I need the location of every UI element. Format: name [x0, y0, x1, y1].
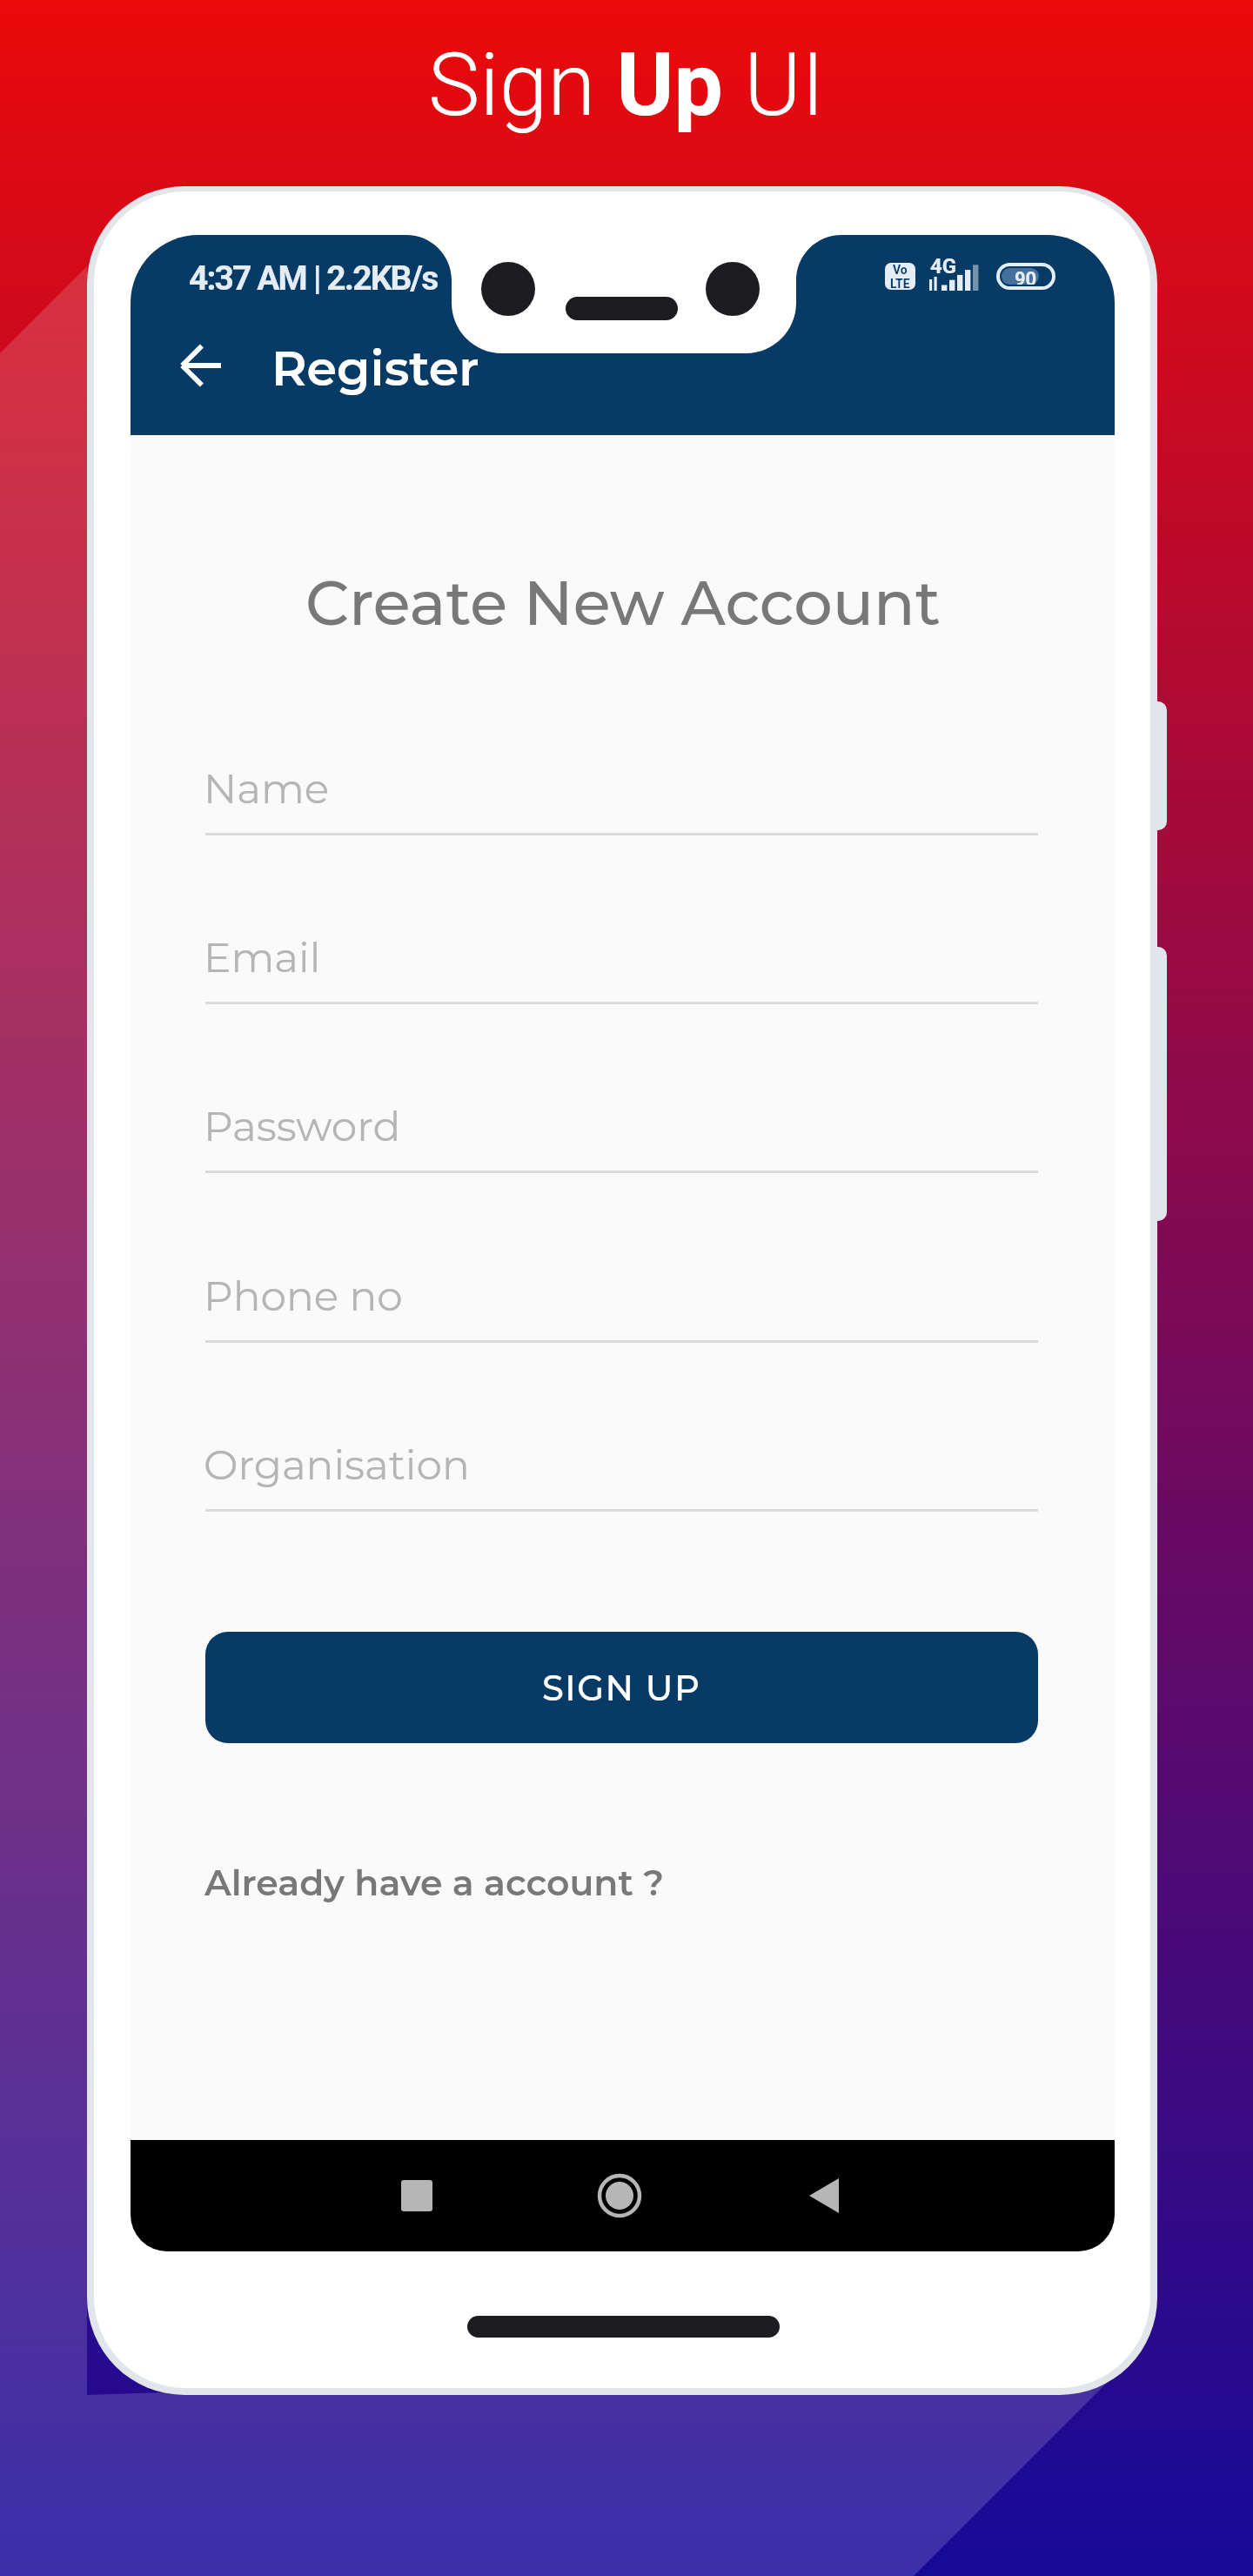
staticText: Create New Account [305, 566, 941, 640]
button[interactable]: Home [585, 2161, 654, 2231]
staticText: 4G [930, 254, 957, 278]
staticText: 90 [1015, 268, 1037, 285]
staticText: Organisation [204, 1440, 470, 1490]
staticText: Email [204, 933, 321, 983]
button[interactable]: Name [205, 748, 1038, 835]
button[interactable]: Recent apps [382, 2161, 452, 2231]
button[interactable]: Back [165, 331, 235, 400]
button[interactable]: Already have a account ? [204, 1861, 664, 1904]
staticText: Name [204, 764, 330, 814]
staticText: Register [271, 339, 479, 398]
button[interactable]: SIGN UP [205, 1632, 1038, 1743]
staticText: Already have a account ? [204, 1861, 664, 1904]
staticText: SIGN UP [542, 1667, 701, 1709]
button[interactable]: Password [205, 1085, 1038, 1173]
staticText: Vo [893, 263, 908, 277]
button[interactable]: Organisation [205, 1424, 1038, 1512]
button[interactable]: Phone no [205, 1255, 1038, 1343]
staticText: Password [204, 1102, 401, 1151]
staticText: Phone no [204, 1271, 403, 1321]
staticText: 4:37 AM | 2.2KB/s [189, 258, 438, 299]
staticText: Sign Up UI [428, 34, 825, 136]
button[interactable]: Back [789, 2161, 859, 2231]
staticText: LTE [890, 277, 910, 290]
button[interactable]: Email [205, 916, 1038, 1004]
